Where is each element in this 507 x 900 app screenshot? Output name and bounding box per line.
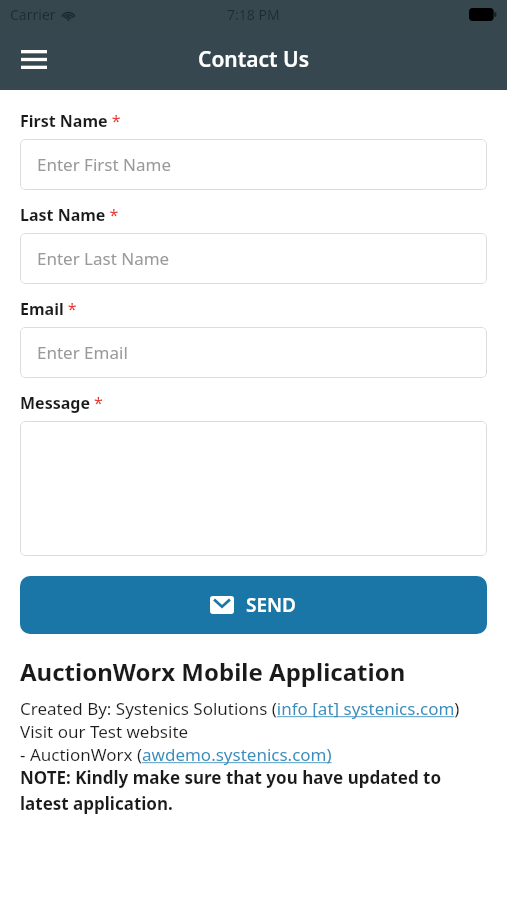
staticText: 7:18 PM xyxy=(227,5,280,24)
button[interactable]: Enter Email xyxy=(20,327,487,378)
staticText: - AuctionWorx (awdemo.systenics.com) xyxy=(20,743,332,766)
staticText: Enter Last Name xyxy=(37,247,170,270)
button[interactable]: Open navigation menu xyxy=(12,37,56,81)
button[interactable]: Enter Last Name xyxy=(20,233,487,284)
staticText: Visit our Test website xyxy=(20,720,189,743)
button[interactable]: Enter First Name xyxy=(20,139,487,190)
staticText: Message * xyxy=(20,392,103,414)
staticText: Email * xyxy=(20,298,77,320)
staticText: Enter First Name xyxy=(37,153,171,176)
staticText: First Name * xyxy=(20,110,121,132)
staticText: Contact Us xyxy=(198,45,310,74)
staticText: Enter Email xyxy=(37,341,128,364)
button[interactable] xyxy=(20,421,487,556)
staticText: AuctionWorx Mobile Application xyxy=(20,655,406,688)
staticText: Carrier xyxy=(10,5,56,24)
staticText: Last Name * xyxy=(20,204,119,226)
button[interactable]: SEND xyxy=(20,576,487,634)
staticText: SEND xyxy=(246,592,297,618)
staticText: NOTE: Kindly make sure that you have upd… xyxy=(20,766,487,815)
staticText: Created By: Systenics Solutions (info [a… xyxy=(20,697,460,720)
